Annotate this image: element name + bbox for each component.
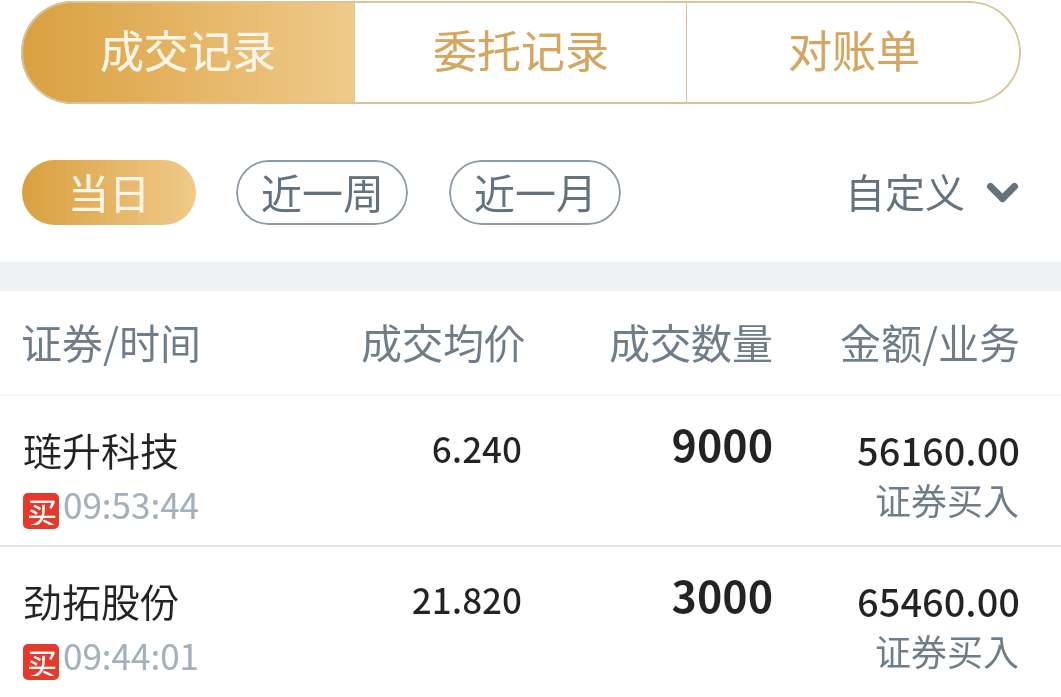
staticText: 6.240 xyxy=(0,422,522,473)
staticText: 劲拓股份 xyxy=(23,572,180,628)
staticText: 自定义 xyxy=(845,162,965,220)
staticText: 委托记录 xyxy=(433,17,609,81)
button[interactable]: 对账单 xyxy=(687,1,1021,104)
button[interactable]: 成交记录 xyxy=(21,1,354,104)
staticText: 金额/业务 xyxy=(840,311,1021,370)
staticText: 证券买入 xyxy=(0,624,1019,676)
staticText: 成交均价 xyxy=(361,311,525,370)
staticText: 买 xyxy=(27,493,57,525)
button[interactable]: 劲拓股份 xyxy=(0,545,1061,696)
staticText: 证券买入 xyxy=(0,473,1019,525)
staticText: 买 xyxy=(27,644,57,676)
button[interactable]: 当日 xyxy=(22,160,196,225)
staticText: 09:53:44 xyxy=(63,478,200,529)
staticText: 21.820 xyxy=(0,573,522,624)
staticText: 对账单 xyxy=(788,17,920,81)
button[interactable]: 自定义 xyxy=(845,160,1018,225)
button[interactable]: 琏升科技 xyxy=(0,394,1061,545)
staticText: 当日 xyxy=(68,161,150,220)
staticText: 09:44:01 xyxy=(63,629,200,680)
button[interactable]: 委托记录 xyxy=(355,1,686,104)
staticText: 近一月 xyxy=(474,161,597,220)
button[interactable]: 近一周 xyxy=(236,160,408,225)
button[interactable]: 近一月 xyxy=(449,160,621,225)
staticText: 56160.00 xyxy=(0,422,1020,477)
other: 展开自定义日期 xyxy=(987,183,1018,202)
staticText: 3000 xyxy=(0,563,773,625)
staticText: 琏升科技 xyxy=(23,421,180,477)
staticText: 9000 xyxy=(0,412,773,474)
staticText: 65460.00 xyxy=(0,573,1020,628)
staticText: 成交数量 xyxy=(609,311,773,370)
staticText: 近一周 xyxy=(261,161,384,220)
staticText: 成交记录 xyxy=(100,17,276,81)
staticText: 证券/时间 xyxy=(21,311,202,370)
